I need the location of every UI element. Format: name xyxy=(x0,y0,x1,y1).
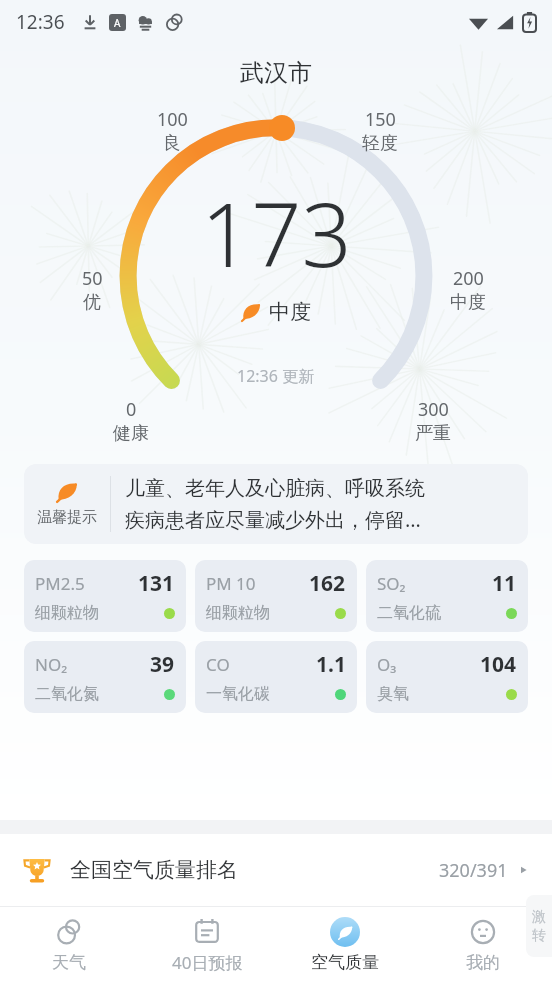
staticText: 1.1 xyxy=(316,650,346,679)
button[interactable]: 全国空气质量排名 xyxy=(0,834,552,906)
staticText: O₃ xyxy=(377,653,397,676)
staticText: 40日预报 xyxy=(172,951,243,974)
button[interactable]: 激 转 xyxy=(526,895,552,957)
button[interactable]: CO xyxy=(195,641,357,713)
staticText: 二氧化氮 xyxy=(35,684,99,704)
staticText: 细颗粒物 xyxy=(206,603,270,623)
staticText: 300 xyxy=(418,397,449,422)
staticText: A xyxy=(114,16,121,30)
button[interactable]: PM 10 xyxy=(195,560,357,632)
staticText: 173 xyxy=(201,173,352,293)
staticText: 良 xyxy=(163,132,181,155)
button[interactable]: 天气 xyxy=(0,907,138,983)
staticText: 39 xyxy=(150,650,175,679)
staticText: NO₂ xyxy=(35,653,68,676)
staticText: PM2.5 xyxy=(35,572,85,595)
staticText: 细颗粒物 xyxy=(35,603,99,623)
button[interactable]: 40日预报 xyxy=(138,907,276,983)
staticText: 武汉市 xyxy=(0,58,552,88)
staticText: 我的 xyxy=(466,952,500,973)
button[interactable]: NO₂ xyxy=(24,641,186,713)
staticText: 空气质量 xyxy=(311,952,379,973)
staticText: 优 xyxy=(83,291,101,314)
staticText: 激 转 xyxy=(532,908,546,944)
button[interactable]: 我的 xyxy=(414,907,552,983)
staticText: 100 xyxy=(157,107,188,132)
staticText: 中度 xyxy=(450,291,486,314)
staticText: 严重 xyxy=(415,422,451,445)
staticText: 50 xyxy=(82,266,103,291)
staticText: 天气 xyxy=(52,952,86,973)
staticText: 104 xyxy=(480,650,517,679)
staticText: 12:36 xyxy=(16,9,65,35)
staticText: 轻度 xyxy=(362,132,398,155)
staticText: CO xyxy=(206,653,230,676)
staticText: 12:36 更新 xyxy=(237,365,315,387)
staticText: 中度 xyxy=(269,299,311,325)
staticText: 臭氧 xyxy=(377,684,409,704)
staticText: PM 10 xyxy=(206,572,256,595)
staticText: 健康 xyxy=(113,422,149,445)
staticText: 温馨提示 xyxy=(37,508,97,527)
staticText: 162 xyxy=(309,569,346,598)
button[interactable]: SO₂ xyxy=(366,560,528,632)
staticText: 320/391 xyxy=(439,858,508,883)
staticText: 儿童、老年人及心脏病、呼吸系统 疾病患者应尽量减少外出，停留… xyxy=(125,476,425,532)
staticText: SO₂ xyxy=(377,572,406,595)
staticText: 0 xyxy=(126,397,137,422)
staticText: 131 xyxy=(138,569,175,598)
staticText: 二氧化硫 xyxy=(377,603,441,623)
button[interactable]: 温馨提示 xyxy=(24,464,528,544)
staticText: 一氧化碳 xyxy=(206,684,270,704)
staticText: 200 xyxy=(453,266,484,291)
staticText: 11 xyxy=(492,569,517,598)
staticText: 150 xyxy=(365,107,396,132)
button[interactable]: PM2.5 xyxy=(24,560,186,632)
button[interactable]: 空气质量 xyxy=(276,907,414,983)
button[interactable]: O₃ xyxy=(366,641,528,713)
staticText: 全国空气质量排名 xyxy=(70,857,238,883)
